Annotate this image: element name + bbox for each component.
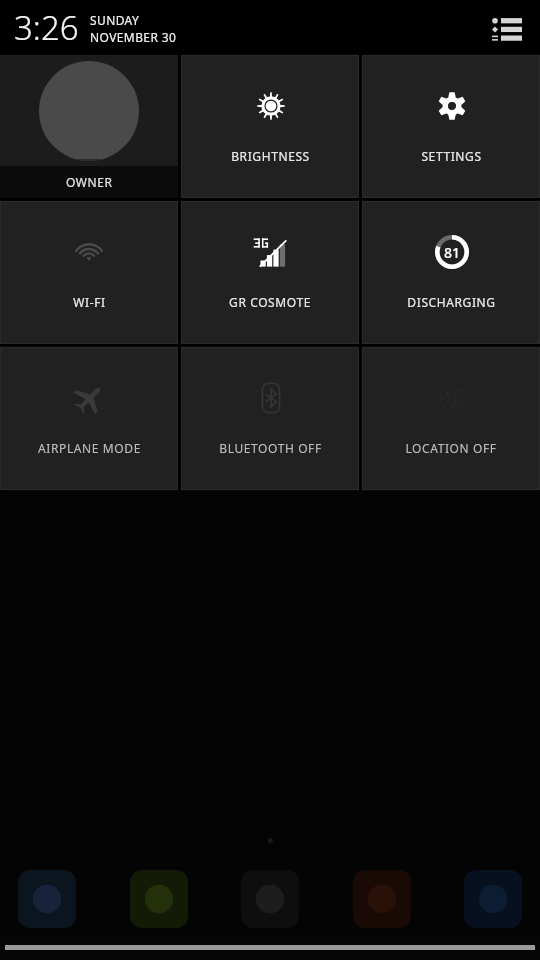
button[interactable]: 81 xyxy=(362,201,540,344)
button[interactable]: App xyxy=(353,870,411,928)
button[interactable]: SETTINGS xyxy=(362,55,540,198)
button[interactable]: BLUETOOTH OFF xyxy=(181,347,359,490)
staticText: DISCHARGING xyxy=(407,294,496,310)
staticText: WI-FI xyxy=(73,294,106,310)
button[interactable]: App xyxy=(241,870,299,928)
button[interactable]: App xyxy=(130,870,188,928)
button[interactable]: BRIGHTNESS xyxy=(181,55,359,198)
staticText: AIRPLANE MODE xyxy=(38,440,141,456)
button[interactable]: WI-FI xyxy=(0,201,178,344)
button[interactable]: App xyxy=(18,870,76,928)
button[interactable]: GR COSMOTE xyxy=(181,201,359,344)
button[interactable]: LOCATION OFF xyxy=(362,347,540,490)
button[interactable]: OWNER xyxy=(0,55,178,198)
staticText: NOVEMBER 30 xyxy=(90,29,177,45)
staticText: SETTINGS xyxy=(421,148,482,164)
staticText: BLUETOOTH OFF xyxy=(219,440,322,456)
button[interactable]: AIRPLANE MODE xyxy=(0,347,178,490)
button[interactable]: Close quick settings xyxy=(0,934,540,960)
staticText: OWNER xyxy=(66,174,113,190)
staticText: GR COSMOTE xyxy=(229,294,311,310)
staticText: LOCATION OFF xyxy=(405,440,497,456)
staticText: 3:26 xyxy=(14,5,79,50)
button[interactable]: Quick settings list xyxy=(484,5,530,51)
staticText: 81 xyxy=(444,243,461,262)
staticText: BRIGHTNESS xyxy=(231,148,310,164)
button[interactable]: App xyxy=(464,870,522,928)
staticText: SUNDAY xyxy=(90,12,140,28)
